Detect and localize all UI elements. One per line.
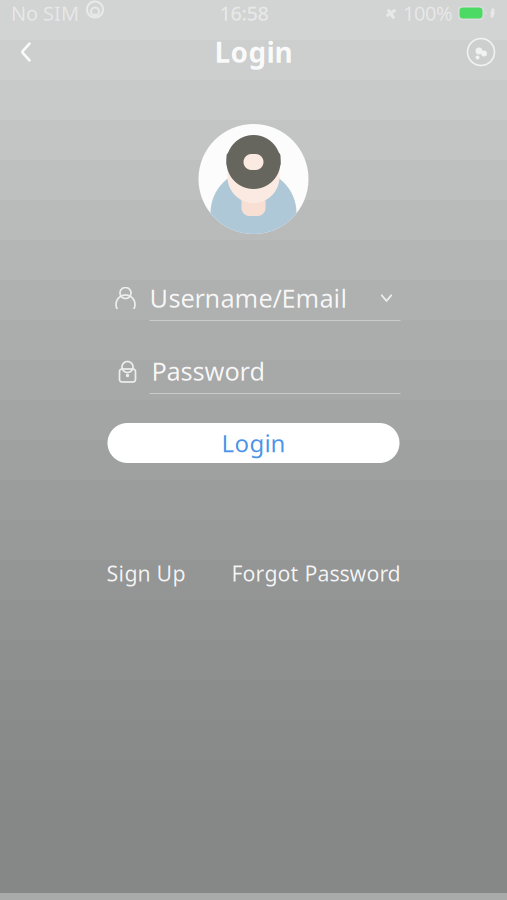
staticText: 100% (403, 0, 453, 26)
staticText: Login (221, 427, 285, 459)
staticText: 16:58 (219, 0, 268, 26)
staticText: Login (214, 33, 292, 71)
staticText: No SIM (11, 0, 79, 26)
button[interactable]: Sign Up (106, 559, 185, 587)
button[interactable]: Forgot Password (231, 559, 400, 587)
staticText: Password (151, 354, 265, 388)
staticText: Username/Email (149, 281, 347, 315)
button[interactable]: Language (455, 26, 507, 78)
button[interactable]: Back (0, 26, 52, 78)
staticText: Sign Up (106, 559, 185, 587)
staticText: Forgot Password (231, 559, 400, 587)
button[interactable]: Login (107, 423, 399, 463)
